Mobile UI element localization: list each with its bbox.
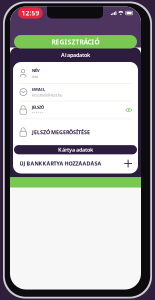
staticText: REGISZTRÁCIÓ bbox=[51, 37, 99, 46]
staticText: kesztheli@test.hu bbox=[32, 92, 62, 98]
button[interactable]: EMAIL bbox=[13, 83, 138, 101]
button[interactable]: ÚJ BANKKÁRTYA HOZZÁADÁSA bbox=[13, 155, 138, 172]
staticText: NÉV bbox=[32, 68, 40, 73]
button[interactable]: REGISZTRÁCIÓ bbox=[14, 35, 137, 48]
staticText: JELSZÓ MEGERŐSÍTÉSE bbox=[32, 129, 90, 136]
button[interactable]: NÉV bbox=[13, 64, 138, 83]
staticText: Kártya adatok bbox=[58, 146, 93, 153]
staticText: •••••• bbox=[32, 110, 44, 115]
staticText: EMAIL bbox=[32, 87, 45, 92]
staticText: Alapadatok bbox=[61, 51, 90, 59]
button[interactable]: JELSZÓ MEGERŐSÍTÉSE bbox=[13, 119, 138, 145]
staticText: 12:59 bbox=[21, 9, 39, 17]
staticText: JELSZÓ bbox=[32, 104, 44, 110]
staticText: ÚJ BANKKÁRTYA HOZZÁADÁSA bbox=[19, 160, 101, 167]
staticText: aaa bbox=[32, 73, 38, 79]
button[interactable]: JELSZÓ bbox=[13, 101, 138, 119]
